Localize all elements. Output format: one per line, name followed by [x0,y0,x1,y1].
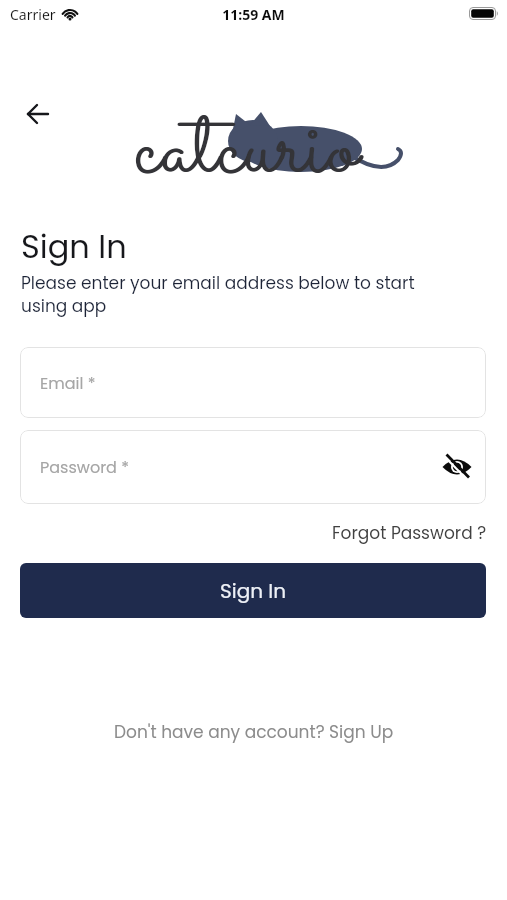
staticText: Email * [40,372,96,394]
staticText: Please enter your email address below to… [21,271,415,318]
staticText: Sign In [220,577,287,605]
button[interactable] [24,100,52,128]
button[interactable]: Forgot Password ? [332,521,487,545]
staticText: Password * [40,456,129,478]
button[interactable]: Password * [20,430,486,504]
button[interactable] [442,455,472,479]
button[interactable]: Don't have any account? Sign Up [114,720,394,744]
staticText: Sign In [21,224,127,269]
staticText: Carrier [10,5,56,24]
staticText: 11:59 AM [0,5,507,24]
button[interactable]: Email * [20,347,486,418]
staticText: catcurio [134,82,358,222]
button[interactable]: Sign In [20,563,486,618]
staticText: catcurio [135,82,359,222]
